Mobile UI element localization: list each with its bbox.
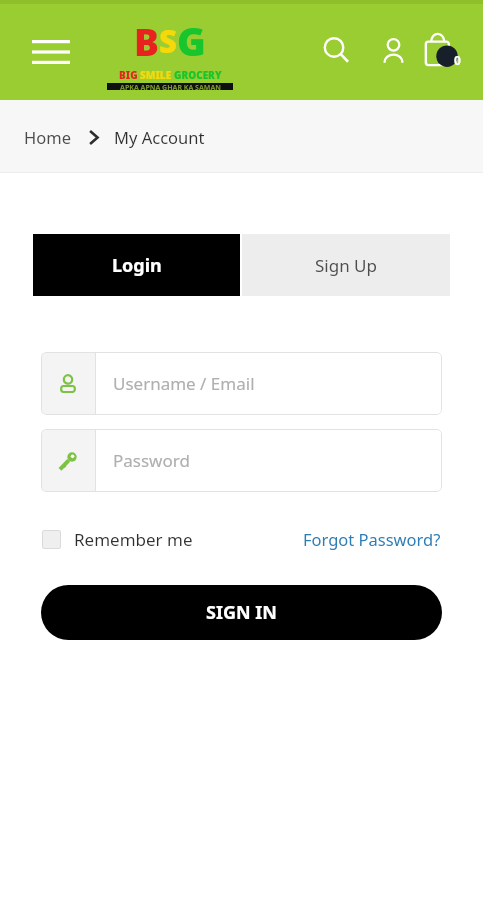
staticText: Password: [113, 449, 190, 472]
button[interactable]: Sign Up: [242, 234, 450, 296]
button[interactable]: Search: [312, 26, 360, 74]
staticText: G: [177, 14, 206, 67]
staticText: Home: [24, 126, 71, 148]
button[interactable]: B: [104, 14, 236, 90]
button[interactable]: Remember me: [42, 528, 193, 551]
staticText: GROCERY: [174, 68, 222, 82]
button[interactable]: Home: [22, 120, 73, 154]
staticText: SIGN IN: [206, 600, 277, 625]
button[interactable]: Account: [370, 26, 416, 74]
staticText: 0: [454, 52, 461, 68]
button[interactable]: Password: [41, 429, 442, 492]
button[interactable]: Menu: [28, 30, 74, 74]
button[interactable]: Login: [33, 234, 240, 296]
staticText: S: [159, 20, 177, 62]
staticText: Remember me: [74, 528, 193, 551]
staticText: Username / Email: [113, 372, 255, 395]
staticText: Forgot Password?: [303, 528, 441, 550]
button[interactable]: SIGN IN: [41, 585, 442, 640]
staticText: Login: [112, 253, 162, 278]
staticText: My Account: [114, 126, 205, 148]
button[interactable]: Cart: [424, 26, 474, 74]
button[interactable]: Forgot Password?: [303, 524, 441, 554]
staticText: SMILE: [140, 68, 172, 82]
staticText: Sign Up: [315, 254, 377, 277]
staticText: BIG: [119, 68, 138, 82]
staticText: B: [134, 16, 159, 66]
button[interactable]: Username / Email: [41, 352, 442, 415]
staticText: APKA APNA GHAR KA SAMAN: [120, 83, 221, 90]
